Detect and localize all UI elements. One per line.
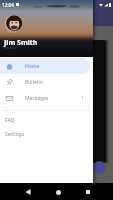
button[interactable]: Home <box>51 185 65 199</box>
staticText: 12:04 <box>2 2 14 8</box>
button[interactable]: Add <box>93 161 106 174</box>
staticText: jsmith <box>4 45 17 51</box>
staticText: Home <box>25 63 40 70</box>
staticText: FAQ <box>5 117 15 124</box>
button[interactable]: Bulletin <box>0 74 90 90</box>
staticText: Messages <box>25 95 49 102</box>
button[interactable]: Messages <box>0 90 90 106</box>
button[interactable]: Settings <box>0 127 93 141</box>
button[interactable]: Back <box>21 185 35 199</box>
staticText: Bulletin <box>25 79 43 86</box>
button[interactable]: Recent apps <box>81 185 95 199</box>
button[interactable]: Home <box>0 58 90 74</box>
staticText: Jim Smith <box>4 38 38 48</box>
button[interactable]: FAQ <box>0 113 93 127</box>
staticText: 1 <box>81 95 84 101</box>
staticText: Settings <box>5 131 25 138</box>
